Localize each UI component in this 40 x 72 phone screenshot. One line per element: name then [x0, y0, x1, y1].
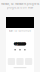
button[interactable]: Continue: [14, 42, 26, 46]
staticText: Continue: [14, 40, 25, 47]
staticText: progress is on view: [7, 6, 33, 9]
staticText: Scan to continue: [8, 29, 31, 32]
staticText: reviews, so reviewers progress: [1, 2, 39, 6]
